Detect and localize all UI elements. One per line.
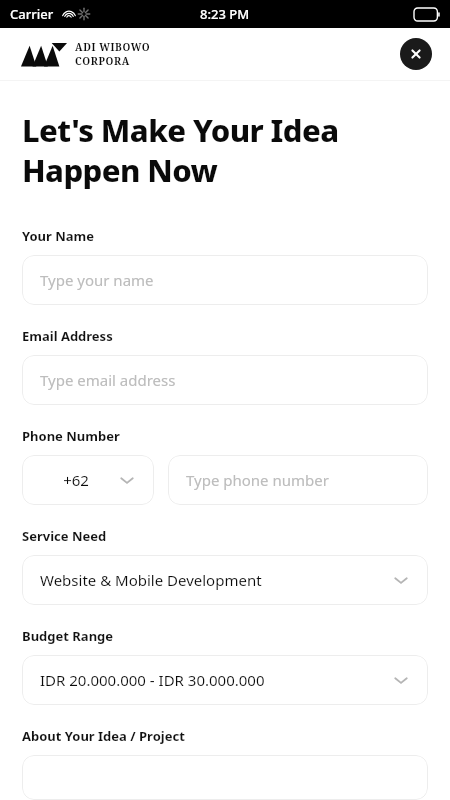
staticText: CORPORA (75, 54, 130, 68)
staticText: 8:23 PM (200, 5, 250, 23)
staticText: ADI WIBOWO (75, 40, 151, 54)
button[interactable]: ADI WIBOWO (20, 40, 151, 68)
staticText: Your Name (22, 227, 95, 245)
staticText: Type email address (40, 370, 410, 390)
staticText: IDR 20.000.000 - IDR 30.000.000 (40, 670, 386, 690)
staticText: Email Address (22, 327, 113, 345)
button[interactable]: Type email address (22, 355, 428, 405)
button[interactable] (22, 755, 428, 800)
staticText: Type phone number (186, 470, 410, 490)
staticText: Let's Make Your Idea Happen Now (22, 109, 339, 191)
staticText: Website & Mobile Development (40, 570, 386, 590)
button[interactable]: +62 (22, 455, 154, 505)
staticText: Type your name (40, 270, 410, 290)
staticText: Budget Range (22, 627, 114, 645)
button[interactable]: Close (400, 38, 432, 70)
staticText: Carrier (10, 5, 54, 23)
staticText: Service Need (22, 527, 107, 545)
staticText: Phone Number (22, 427, 120, 445)
staticText: About Your Idea / Project (22, 727, 185, 745)
button[interactable]: IDR 20.000.000 - IDR 30.000.000 (22, 655, 428, 705)
staticText: +62 (40, 470, 112, 490)
button[interactable]: Website & Mobile Development (22, 555, 428, 605)
button[interactable]: Type phone number (168, 455, 428, 505)
button[interactable]: Type your name (22, 255, 428, 305)
